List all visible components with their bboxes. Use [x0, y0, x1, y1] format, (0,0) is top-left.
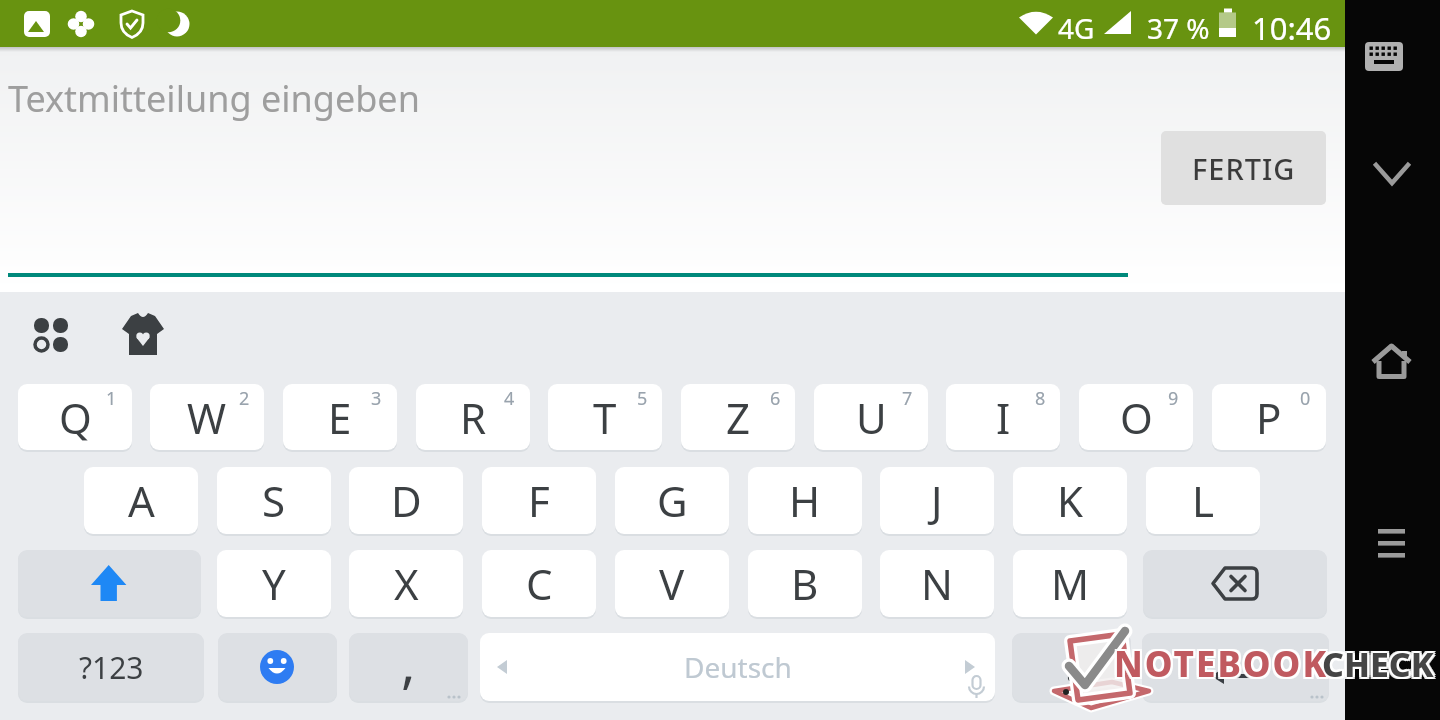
staticText: NOTEBOOK [1114, 640, 1329, 688]
button[interactable]: R [416, 384, 530, 450]
button[interactable]: F [482, 467, 596, 534]
staticText: Textmitteilung eingeben [8, 74, 420, 123]
button[interactable]: D [349, 467, 463, 534]
staticText: 4 [504, 386, 515, 411]
button[interactable]: C [482, 550, 596, 617]
staticText: E [328, 389, 352, 446]
staticText: NOTEBOOK [1116, 642, 1331, 690]
staticText: . [1064, 633, 1079, 691]
button[interactable]: P [1212, 384, 1326, 450]
staticText: H [789, 472, 821, 529]
staticText: 8 [1035, 386, 1046, 411]
staticText: CHECK [1320, 643, 1432, 689]
staticText: 10:46 [1252, 7, 1332, 49]
button[interactable]: Q [18, 384, 132, 450]
staticText: K [1057, 472, 1083, 529]
staticText: T [593, 389, 617, 446]
button[interactable]: U [814, 384, 928, 450]
staticText: 37 % [1147, 9, 1210, 47]
button[interactable]: T [548, 384, 662, 450]
button[interactable]: H [748, 467, 862, 534]
button[interactable]: O [1079, 384, 1193, 450]
staticText: NOTEBOOK [1112, 642, 1327, 690]
staticText: Q [59, 389, 92, 446]
staticText: NOTEBOOK [1112, 640, 1327, 688]
staticText: NOTEBOOK [1116, 640, 1331, 688]
staticText: W [187, 389, 227, 446]
button[interactable]: B [748, 550, 862, 617]
staticText: ?123 [79, 647, 144, 688]
staticText: X [394, 555, 419, 612]
staticText: NOTEBOOK [1114, 638, 1329, 686]
staticText: CHECK [1322, 641, 1434, 687]
button[interactable]: K [1013, 467, 1127, 534]
button[interactable]: , [349, 633, 468, 701]
staticText: 3 [371, 386, 382, 411]
staticText: M [1051, 555, 1090, 612]
staticText: D [391, 472, 422, 529]
button[interactable]: N [880, 550, 994, 617]
staticText: CHECK [1324, 639, 1436, 685]
button[interactable] [1362, 335, 1422, 385]
staticText: R [460, 389, 487, 446]
button[interactable]: S [217, 467, 331, 534]
button[interactable]: Y [217, 550, 331, 617]
button[interactable]: FERTIG [1161, 131, 1326, 205]
staticText: Z [726, 389, 751, 446]
button[interactable]: . [1012, 633, 1131, 701]
button[interactable] [1362, 518, 1422, 568]
button[interactable] [1360, 38, 1408, 76]
staticText: U [856, 389, 887, 446]
staticText: CHECK [1324, 641, 1436, 687]
button[interactable] [121, 313, 165, 357]
button[interactable] [1142, 633, 1329, 701]
staticText: G [657, 472, 688, 529]
button[interactable]: A [84, 467, 198, 534]
staticText: L [1192, 472, 1215, 529]
staticText: J [931, 472, 943, 529]
button[interactable]: E [283, 384, 397, 450]
staticText: 2 [239, 386, 250, 411]
staticText: F [528, 472, 550, 529]
staticText: A [128, 472, 155, 529]
staticText: 5 [637, 386, 648, 411]
staticText: CHECK [1320, 639, 1432, 685]
button[interactable] [18, 550, 201, 617]
staticText: CHECK [1324, 643, 1436, 689]
staticText: 1 [106, 386, 117, 411]
button[interactable]: G [615, 467, 729, 534]
staticText: S [262, 472, 286, 529]
staticText: V [659, 555, 685, 612]
staticText: NOTEBOOK [1116, 638, 1331, 686]
staticText: CHECK [1322, 639, 1434, 685]
staticText: CHECK [1322, 643, 1434, 689]
button[interactable]: J [880, 467, 994, 534]
staticText: P [1256, 389, 1282, 446]
button[interactable]: Z [681, 384, 795, 450]
staticText: 6 [770, 386, 781, 411]
staticText: FERTIG [1192, 149, 1296, 188]
staticText: 4G [1058, 9, 1095, 47]
staticText: 0 [1300, 386, 1311, 411]
staticText: N [921, 555, 953, 612]
staticText: , [401, 633, 416, 693]
button[interactable] [218, 633, 337, 701]
staticText: NOTEBOOK [1114, 642, 1329, 690]
button[interactable]: I [946, 384, 1060, 450]
staticText: B [791, 555, 819, 612]
staticText: 9 [1168, 386, 1179, 411]
button[interactable] [1362, 150, 1422, 200]
button[interactable]: V [615, 550, 729, 617]
button[interactable]: Deutsch [480, 633, 995, 701]
button[interactable]: ?123 [18, 633, 204, 701]
staticText: O [1120, 389, 1153, 446]
staticText: Y [262, 555, 286, 612]
button[interactable] [30, 313, 74, 357]
button[interactable]: W [150, 384, 264, 450]
button[interactable]: M [1013, 550, 1127, 617]
button[interactable]: L [1146, 467, 1260, 534]
button[interactable]: X [349, 550, 463, 617]
staticText: C [526, 555, 553, 612]
staticText: I [996, 389, 1011, 446]
button[interactable] [1143, 550, 1327, 617]
